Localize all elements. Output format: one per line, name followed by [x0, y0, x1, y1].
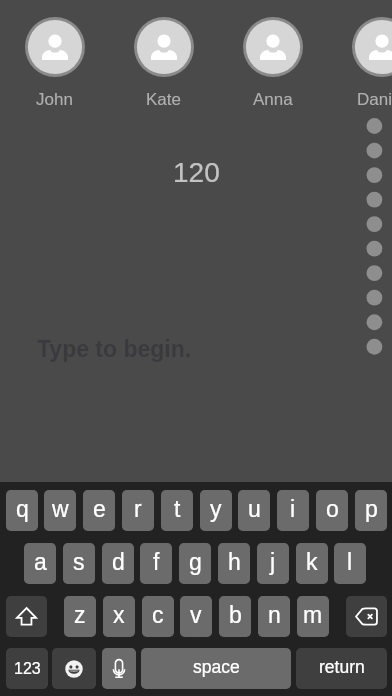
staticText: a — [34, 549, 47, 575]
button[interactable]: c — [142, 596, 174, 637]
button[interactable]: i — [277, 490, 309, 531]
button[interactable]: Dictation — [102, 648, 136, 689]
staticText: o — [326, 496, 339, 522]
staticText: r — [134, 496, 142, 522]
button[interactable]: j — [257, 543, 289, 584]
button[interactable]: y — [200, 490, 232, 531]
staticText: n — [268, 602, 281, 628]
staticText: u — [248, 496, 261, 522]
button[interactable]: d — [102, 543, 134, 584]
button[interactable]: Shift — [6, 596, 47, 637]
button[interactable]: Daniel — [327, 0, 392, 109]
staticText: z — [74, 602, 86, 628]
staticText: t — [174, 496, 181, 522]
staticText: Type to begin. — [37, 336, 192, 362]
button[interactable]: z — [64, 596, 96, 637]
button[interactable]: e — [83, 490, 115, 531]
button[interactable]: o — [316, 490, 348, 531]
button[interactable]: 123 — [6, 648, 48, 689]
staticText: 123 — [14, 660, 41, 678]
staticText: s — [73, 549, 85, 575]
staticText: space — [193, 657, 240, 677]
staticText: i — [290, 496, 296, 522]
staticText: y — [210, 496, 222, 522]
staticText: e — [93, 496, 106, 522]
staticText: x — [113, 602, 125, 628]
staticText: f — [153, 549, 160, 575]
button[interactable]: John — [0, 0, 109, 109]
button[interactable]: l — [334, 543, 366, 584]
staticText: d — [112, 549, 125, 575]
button[interactable]: s — [63, 543, 95, 584]
staticText: John — [36, 90, 73, 109]
staticText: Anna — [253, 90, 293, 109]
button[interactable]: f — [140, 543, 172, 584]
staticText: b — [229, 602, 242, 628]
staticText: v — [190, 602, 202, 628]
button[interactable]: n — [258, 596, 290, 637]
button[interactable]: Kate — [109, 0, 218, 109]
staticText: w — [52, 496, 69, 522]
staticText: g — [189, 549, 202, 575]
staticText: c — [152, 602, 164, 628]
button[interactable]: p — [355, 490, 387, 531]
staticText: l — [347, 549, 353, 575]
button[interactable]: Emoji keyboard — [52, 648, 96, 689]
button[interactable]: u — [238, 490, 270, 531]
button[interactable]: space — [141, 648, 291, 689]
staticText: 120 — [173, 157, 220, 188]
button[interactable]: x — [103, 596, 135, 637]
button[interactable]: return — [296, 648, 387, 689]
staticText: h — [228, 549, 241, 575]
staticText: return — [319, 657, 365, 677]
button[interactable]: m — [297, 596, 329, 637]
staticText: j — [270, 549, 276, 575]
button[interactable]: k — [296, 543, 328, 584]
button[interactable]: w — [44, 490, 76, 531]
staticText: k — [306, 549, 318, 575]
button[interactable]: Backspace — [346, 596, 387, 637]
button[interactable]: r — [122, 490, 154, 531]
button[interactable]: Anna — [218, 0, 327, 109]
staticText: q — [16, 496, 29, 522]
button[interactable]: v — [180, 596, 212, 637]
button[interactable]: a — [24, 543, 56, 584]
staticText: p — [365, 496, 378, 522]
button[interactable]: g — [179, 543, 211, 584]
button[interactable]: t — [161, 490, 193, 531]
button[interactable]: h — [218, 543, 250, 584]
button[interactable]: b — [219, 596, 251, 637]
staticText: m — [303, 602, 323, 628]
staticText: Daniel — [357, 90, 392, 109]
staticText: Kate — [146, 90, 181, 109]
button[interactable]: q — [6, 490, 38, 531]
